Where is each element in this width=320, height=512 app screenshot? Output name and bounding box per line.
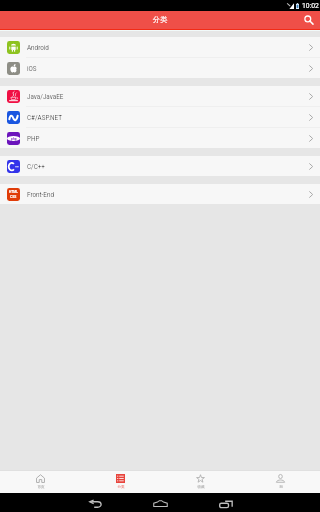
staticText: Front-End [27, 191, 54, 198]
staticText: Android [27, 44, 49, 51]
button[interactable]: C/C++ [0, 156, 320, 176]
staticText: CSS [10, 195, 17, 199]
staticText: 分类 [117, 485, 125, 490]
button[interactable]: Search [296, 11, 320, 29]
staticText: HTML [9, 190, 18, 194]
button[interactable]: Home [128, 493, 193, 512]
staticText: 收藏 [197, 485, 205, 490]
button[interactable]: Recents [193, 493, 258, 512]
staticText: Java/JavaEE [27, 93, 64, 100]
staticText: iOS [27, 65, 37, 72]
staticText: C#/ASP.NET [27, 114, 62, 121]
button[interactable]: 我 [240, 471, 320, 493]
staticText: 10:02 [302, 2, 319, 10]
staticText: 首页 [37, 485, 45, 490]
button[interactable]: 分类 [80, 471, 160, 493]
staticText: PHP [27, 135, 40, 142]
button[interactable]: Java/JavaEE [0, 86, 320, 106]
staticText: 分类 [153, 15, 168, 24]
staticText: php [11, 137, 17, 141]
button[interactable]: C#/ASP.NET [0, 107, 320, 127]
button[interactable]: 收藏 [160, 471, 240, 493]
staticText: 我 [279, 485, 283, 490]
button[interactable]: 首页 [0, 471, 80, 493]
button[interactable]: Android [0, 37, 320, 57]
button[interactable]: php [0, 128, 320, 148]
button[interactable]: iOS [0, 58, 320, 78]
button[interactable]: Back [63, 493, 128, 512]
button[interactable]: HTML [0, 184, 320, 204]
staticText: C/C++ [27, 163, 45, 170]
